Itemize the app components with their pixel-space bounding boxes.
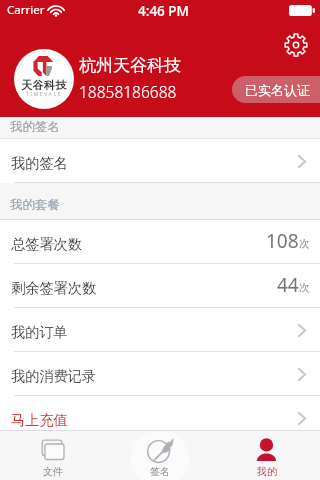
staticText: 签名 [150, 465, 170, 478]
staticText: 108 [266, 228, 299, 254]
staticText: 我的订单 [11, 323, 68, 341]
staticText: 4:46 PM [138, 2, 189, 20]
staticText: 总签署次数 [11, 235, 82, 253]
button[interactable]: 签名 [106, 430, 213, 480]
button[interactable]: 我的消费记录 [0, 352, 320, 396]
staticText: 文件 [43, 465, 63, 478]
staticText: 剩余签署次数 [11, 279, 97, 297]
staticText: 次 [299, 281, 310, 294]
button[interactable]: 我的订单 [0, 308, 320, 352]
staticText: 马上充值 [11, 411, 68, 429]
button[interactable]: 总签署次数 [0, 220, 320, 264]
staticText: 已实名认证 [245, 82, 310, 98]
staticText: 18858186688 [79, 81, 177, 102]
staticText: 44 [277, 272, 299, 298]
staticText: 杭州天谷科技 [79, 55, 181, 76]
staticText: 我的签名 [11, 154, 68, 172]
button[interactable]: 文件 [0, 430, 106, 480]
staticText: 我的 [257, 465, 277, 478]
button[interactable]: 马上充值 [0, 396, 320, 440]
button[interactable]: 我的 [213, 430, 320, 480]
staticText: 我的消费记录 [11, 367, 97, 385]
staticText: 次 [299, 237, 310, 250]
staticText: 天谷科技 [14, 78, 74, 92]
button[interactable]: 剩余签署次数 [0, 264, 320, 308]
staticText: 我的套餐 [10, 197, 60, 213]
staticText: Carrier [7, 2, 45, 18]
button[interactable]: 我的签名 [0, 139, 320, 183]
button[interactable]: 已实名认证 [232, 76, 320, 103]
button[interactable]: Settings [283, 32, 309, 58]
staticText: 我的签名 [10, 119, 60, 135]
staticText: TIMEVALE [14, 91, 74, 98]
